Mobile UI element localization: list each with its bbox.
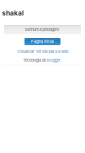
staticText: Blogger — [47, 58, 61, 63]
staticText: Tecnologia do — [23, 58, 47, 63]
staticText: Visualizar versão para a web — [17, 49, 68, 54]
button[interactable]: Página inicial — [24, 38, 60, 45]
button[interactable]: Visualizar versão para a web — [0, 49, 85, 54]
staticText: Página inicial — [31, 39, 54, 44]
staticText: shakal — [2, 9, 24, 17]
staticText: . — [61, 58, 62, 63]
staticText: Nenhuma postagem. — [24, 27, 60, 32]
